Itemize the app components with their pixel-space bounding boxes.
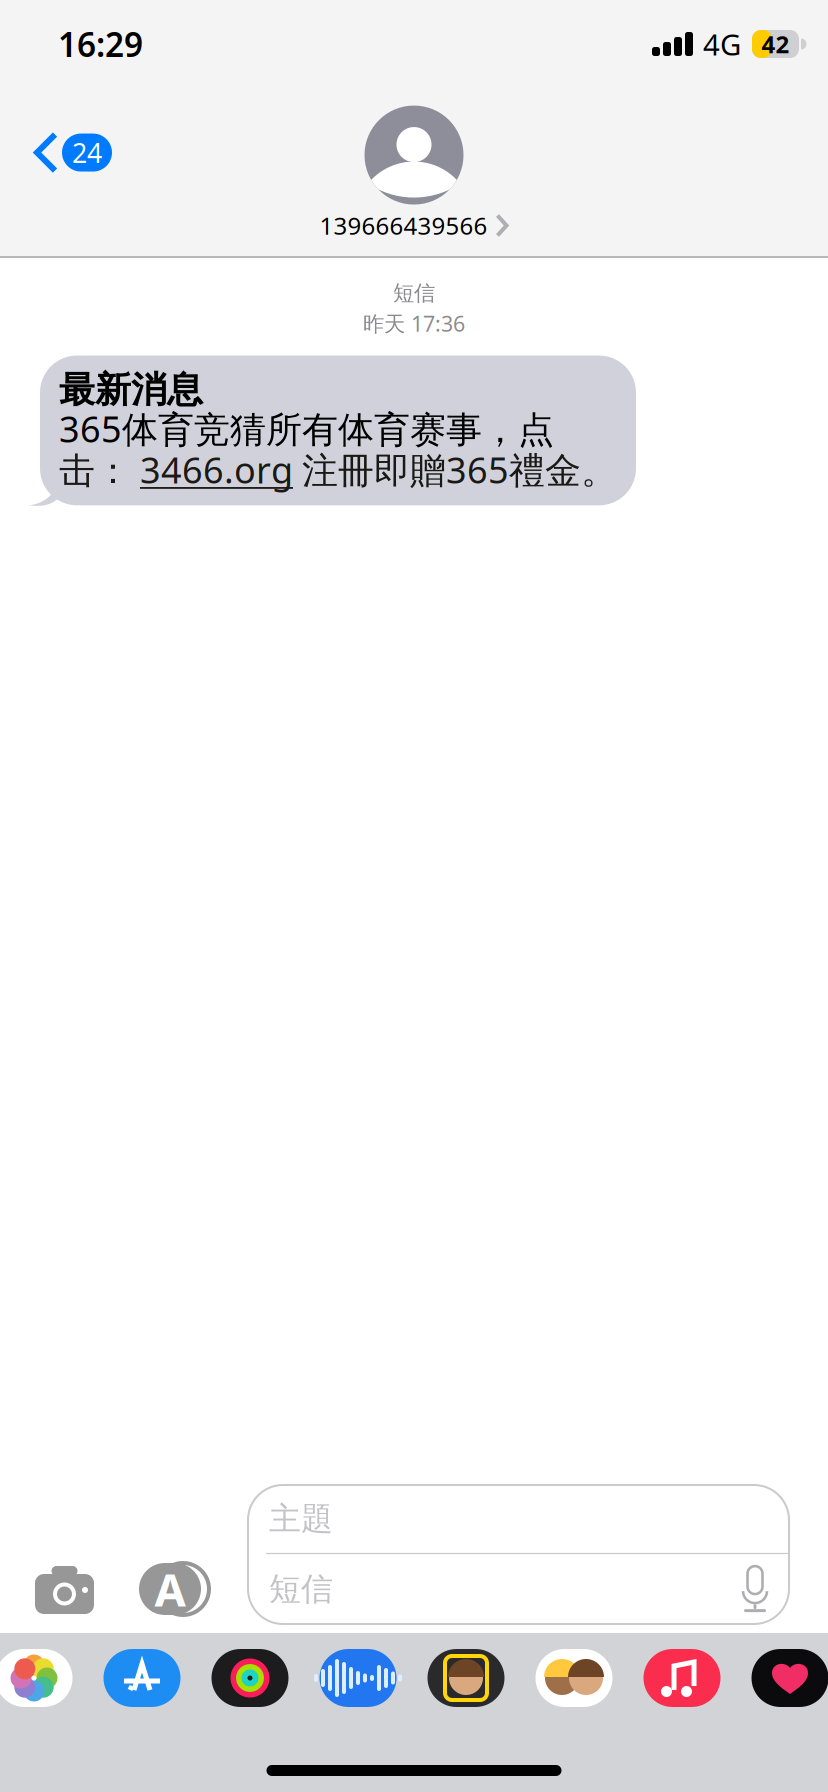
staticText: 139666439566 xyxy=(319,210,487,241)
staticText: A xyxy=(154,1559,185,1619)
button[interactable]: Health xyxy=(751,1649,828,1707)
button[interactable]: Voice Memos xyxy=(319,1649,396,1707)
button[interactable]: Photos xyxy=(0,1649,72,1707)
staticText: 击： 3466.org 注冊即贈365禮金。 xyxy=(59,446,617,493)
staticText: 42 xyxy=(761,28,789,60)
button[interactable]: App Store xyxy=(103,1649,180,1707)
button[interactable]: Memoji xyxy=(535,1649,612,1707)
button[interactable]: 24 xyxy=(0,120,128,186)
button[interactable]: Music xyxy=(643,1649,720,1707)
button[interactable]: Memoji Stickers xyxy=(427,1649,504,1707)
staticText: 主題 xyxy=(269,1499,333,1538)
button[interactable]: 主題 xyxy=(248,1485,789,1624)
staticText: 短信 xyxy=(393,280,435,306)
staticText: 短信 xyxy=(269,1569,333,1609)
button[interactable]: Apps xyxy=(138,1563,210,1615)
staticText: 昨天 17:36 xyxy=(363,309,465,337)
staticText: 365体育竞猜所有体育赛事，点 xyxy=(59,405,554,453)
staticText: 24 xyxy=(72,135,102,170)
button[interactable]: Fitness xyxy=(211,1649,288,1707)
staticText: 最新消息 xyxy=(59,367,203,412)
staticText: 4G xyxy=(703,24,741,63)
button[interactable]: Camera xyxy=(35,1566,94,1614)
staticText: 16:29 xyxy=(58,22,143,66)
